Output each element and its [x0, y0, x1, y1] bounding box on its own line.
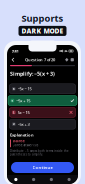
- staticText: −5x + 15: [16, 98, 30, 103]
- staticText: 5x − 15: [18, 110, 30, 115]
- staticText: −5x − 15: [18, 86, 32, 91]
- button[interactable]: D: [7, 119, 78, 129]
- button[interactable]: A: [7, 84, 78, 94]
- button[interactable]: Continue: [7, 162, 78, 173]
- staticText: Simplify: −5(x + 3): [10, 70, 55, 77]
- button[interactable]: Stats: [42, 175, 60, 184]
- button[interactable]: C: [7, 107, 78, 117]
- staticText: A: [13, 87, 15, 90]
- staticText: D: [13, 122, 15, 126]
- staticText: B: [11, 99, 13, 102]
- staticText: DARK MODE: [21, 26, 63, 35]
- button[interactable]: Practice: [25, 175, 43, 184]
- staticText: Incorrect: [12, 140, 24, 143]
- staticText: Continue: [32, 165, 52, 170]
- button[interactable]: Profile: [60, 175, 78, 184]
- button[interactable]: Streak: [64, 57, 69, 62]
- staticText: Supports: [21, 12, 63, 24]
- staticText: 9:41: [11, 48, 18, 54]
- button[interactable]: Bookmark: [69, 57, 75, 62]
- staticText: C: [13, 111, 15, 114]
- button[interactable]: B: [7, 96, 78, 106]
- staticText: −5x + 3: [18, 121, 30, 127]
- button[interactable]: Back: [10, 57, 16, 62]
- staticText: Explanation: [10, 132, 34, 137]
- staticText: Distribute −5 across both terms inside t…: [10, 149, 69, 156]
- button[interactable]: Home: [7, 175, 25, 184]
- staticText: Question 7 of 20: [25, 57, 55, 62]
- staticText: Correct answer is B: [12, 143, 38, 147]
